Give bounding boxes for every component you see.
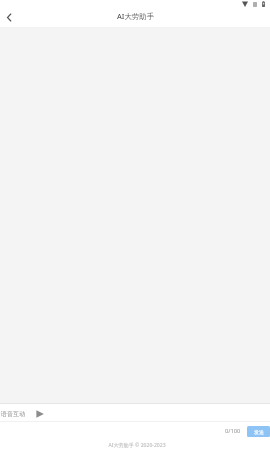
staticText: 0/100: [225, 427, 241, 435]
button[interactable]: Play voice: [35, 408, 45, 420]
staticText: AI大劳助手: [117, 11, 155, 21]
staticText: 语音互动: [1, 410, 25, 418]
staticText: 发送: [254, 429, 264, 435]
button[interactable]: 发送: [247, 426, 270, 437]
button[interactable]: Back: [0, 8, 18, 26]
staticText: AI大劳助手 © 2020-2023: [108, 442, 166, 449]
